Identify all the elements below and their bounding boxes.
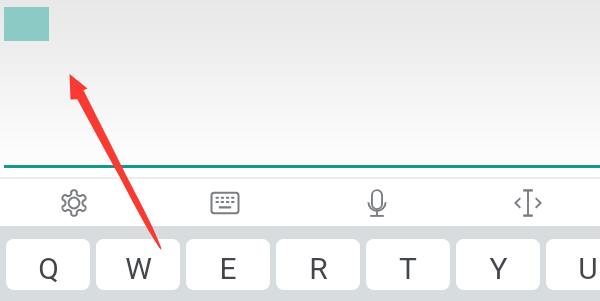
button[interactable]: Y (456, 239, 540, 290)
staticText: Q (38, 251, 59, 286)
button[interactable]: Q (6, 239, 90, 290)
button[interactable]: W (96, 239, 180, 290)
staticText: W (125, 251, 152, 286)
button[interactable]: R (276, 239, 360, 290)
button[interactable]: Settings (42, 179, 106, 226)
staticText: E (219, 251, 237, 286)
staticText: U (578, 251, 598, 286)
button[interactable]: Voice input (345, 179, 409, 226)
staticText: R (309, 251, 328, 286)
staticText: T (399, 251, 417, 286)
staticText: Y (489, 251, 508, 286)
button[interactable]: Keyboard (193, 179, 257, 226)
button[interactable]: Move cursor (496, 179, 560, 226)
button[interactable]: U (546, 239, 600, 290)
button[interactable]: T (366, 239, 450, 290)
button[interactable]: E (186, 239, 270, 290)
